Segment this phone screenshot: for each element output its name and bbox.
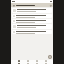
button[interactable]: Add — [48, 55, 52, 59]
button[interactable]: Profile — [44, 60, 47, 64]
button[interactable]: Home — [17, 60, 20, 64]
button[interactable]: Menu — [12, 4, 15, 7]
button[interactable] — [12, 24, 52, 29]
button[interactable]: Library — [35, 60, 38, 64]
button[interactable] — [12, 14, 52, 18]
button[interactable] — [12, 19, 52, 23]
button[interactable] — [12, 8, 52, 13]
button[interactable]: Search — [49, 4, 52, 7]
button[interactable]: Browse — [26, 60, 29, 64]
button[interactable] — [12, 30, 52, 34]
